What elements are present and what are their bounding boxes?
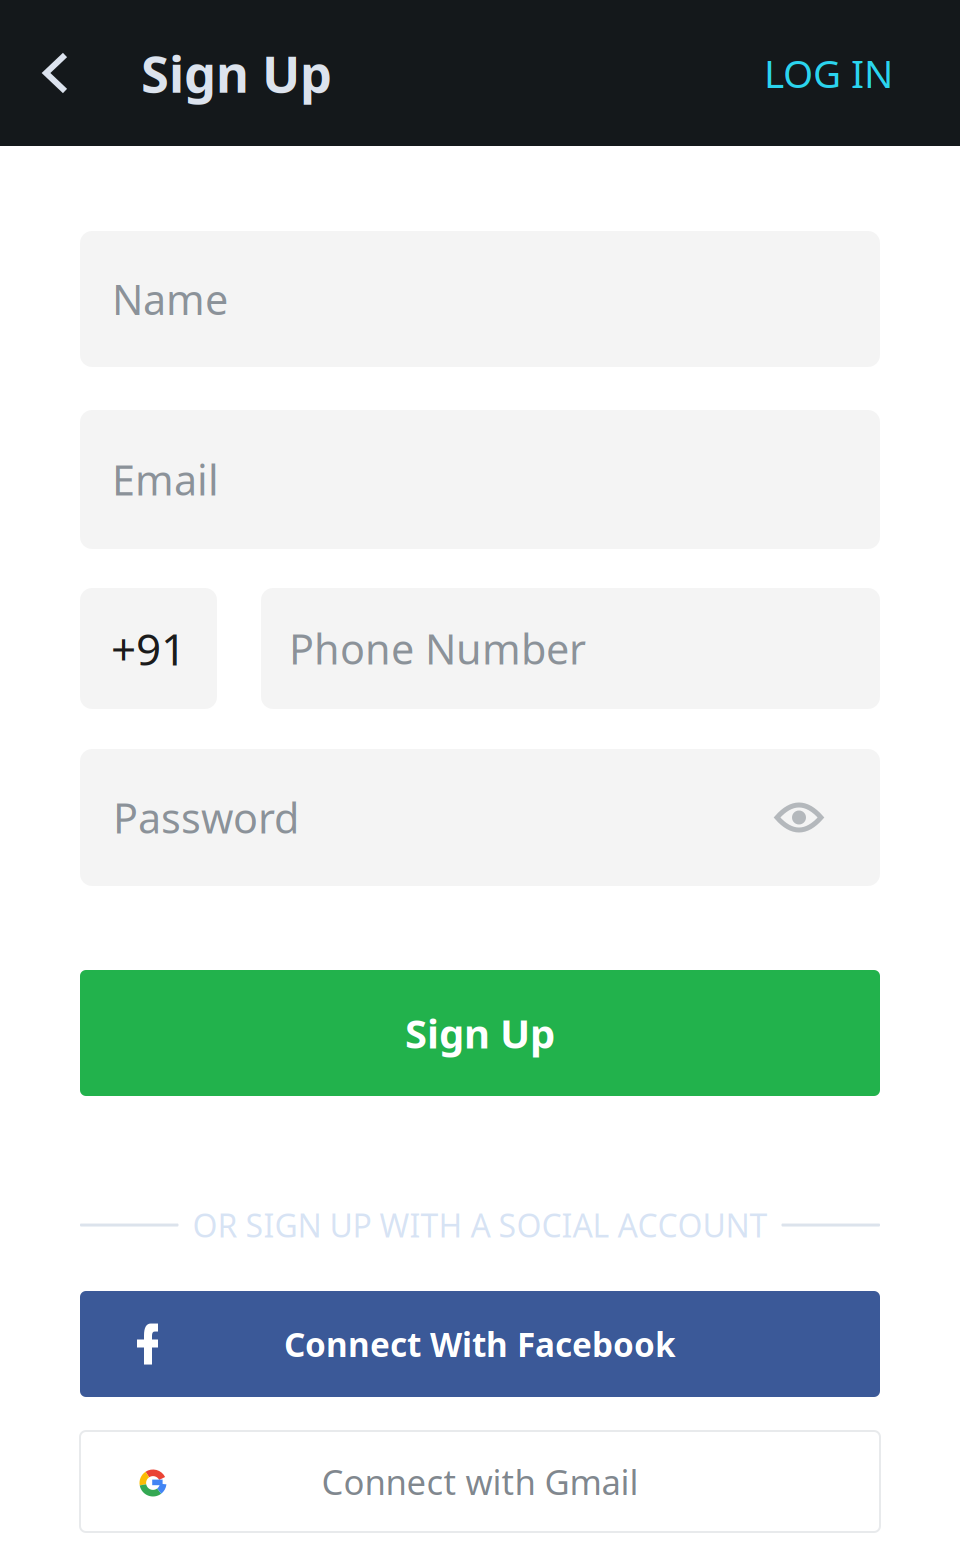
staticText: +91: [111, 619, 186, 678]
button[interactable]: Back: [0, 0, 141, 146]
staticText: Connect With Facebook: [284, 1322, 676, 1366]
button[interactable]: LOG IN: [740, 0, 960, 146]
staticText: Phone Number: [289, 621, 586, 676]
button[interactable]: Sign Up: [80, 970, 880, 1096]
button[interactable]: Connect with Gmail: [80, 1431, 880, 1532]
staticText: LOG IN: [764, 47, 893, 99]
staticText: OR SIGN UP WITH A SOCIAL ACCOUNT: [192, 1204, 767, 1246]
staticText: Sign Up: [405, 1006, 555, 1059]
button[interactable]: Show password: [748, 772, 880, 862]
staticText: Email: [112, 452, 219, 507]
staticText: Connect with Gmail: [321, 1458, 638, 1504]
button[interactable]: Connect With Facebook: [80, 1291, 880, 1397]
staticText: Sign Up: [141, 39, 332, 107]
staticText: Password: [113, 790, 299, 845]
staticText: Name: [112, 272, 228, 326]
